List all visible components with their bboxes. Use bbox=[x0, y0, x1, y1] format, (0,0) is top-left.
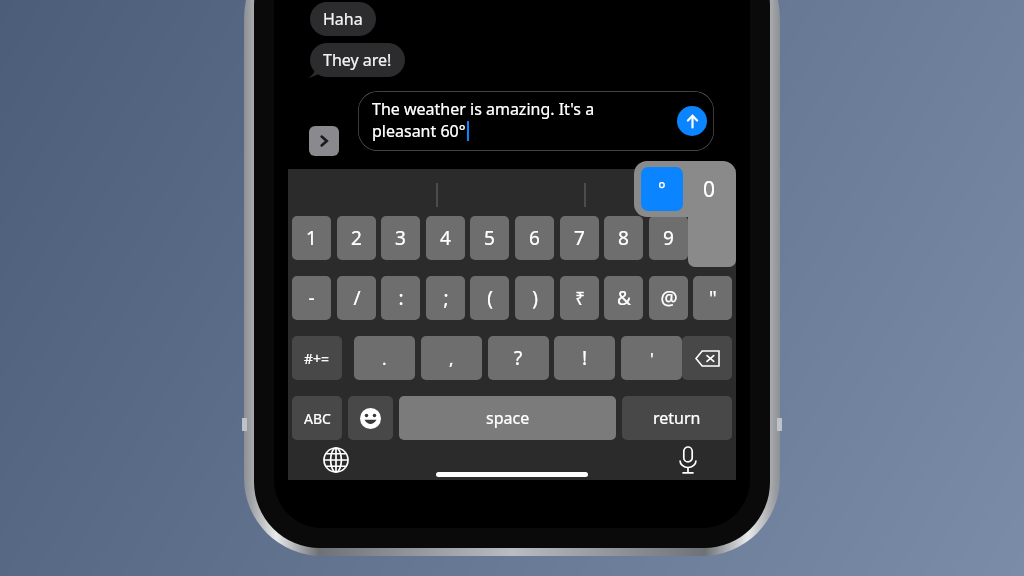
staticText: " bbox=[709, 285, 717, 311]
staticText: . bbox=[382, 347, 387, 370]
button[interactable]: 5 bbox=[470, 216, 509, 260]
staticText: #+= bbox=[304, 349, 330, 368]
staticText: ABC bbox=[304, 409, 331, 428]
button[interactable]: ; bbox=[426, 276, 465, 320]
button[interactable]: , bbox=[421, 336, 482, 380]
staticText: ! bbox=[582, 345, 588, 371]
staticText: @ bbox=[660, 285, 678, 311]
staticText: ? bbox=[514, 345, 523, 371]
staticText: 3 bbox=[395, 225, 406, 251]
button[interactable]: Send message bbox=[677, 106, 707, 136]
button[interactable]: Emoji keyboard bbox=[348, 396, 393, 440]
button[interactable]: Dictate bbox=[668, 440, 708, 480]
button[interactable]: ₹ bbox=[560, 276, 599, 320]
staticText: 1 bbox=[306, 225, 317, 251]
button[interactable]: Haha bbox=[310, 2, 376, 36]
staticText: ) bbox=[532, 285, 538, 311]
button[interactable]: 8 bbox=[604, 216, 643, 260]
staticText: ' bbox=[650, 347, 654, 370]
staticText: ( bbox=[487, 285, 493, 311]
staticText: & bbox=[617, 285, 631, 311]
button[interactable]: ABC bbox=[292, 396, 342, 440]
button[interactable]: ' bbox=[621, 336, 682, 380]
staticText: ; bbox=[443, 285, 449, 311]
button[interactable]: ) bbox=[515, 276, 554, 320]
staticText: - bbox=[308, 285, 315, 311]
button[interactable]: " bbox=[693, 276, 732, 320]
button[interactable]: 2 bbox=[337, 216, 376, 260]
staticText: : bbox=[398, 285, 404, 311]
button[interactable]: 3 bbox=[381, 216, 420, 260]
staticText: 2 bbox=[351, 225, 362, 251]
button[interactable]: ? bbox=[488, 336, 549, 380]
button[interactable]: . bbox=[354, 336, 415, 380]
staticText: 6 bbox=[529, 225, 540, 251]
staticText: ° bbox=[658, 177, 666, 202]
button[interactable]: & bbox=[604, 276, 643, 320]
button[interactable]: #+= bbox=[292, 336, 342, 380]
staticText: 8 bbox=[618, 225, 629, 251]
button[interactable]: 4 bbox=[426, 216, 465, 260]
button[interactable]: 7 bbox=[560, 216, 599, 260]
staticText: They are! bbox=[323, 49, 392, 71]
button[interactable]: 9 bbox=[649, 216, 688, 260]
button[interactable]: ! bbox=[554, 336, 615, 380]
button[interactable]: @ bbox=[649, 276, 688, 320]
staticText: 4 bbox=[440, 225, 451, 251]
button[interactable]: The weather is amazing. It's a bbox=[358, 91, 714, 151]
staticText: / bbox=[353, 285, 361, 311]
staticText: The weather is amazing. It's a bbox=[372, 98, 595, 120]
button[interactable]: Backspace bbox=[682, 336, 732, 380]
button[interactable]: Change keyboard language bbox=[316, 440, 356, 480]
staticText: return bbox=[653, 407, 701, 429]
button[interactable]: 6 bbox=[515, 216, 554, 260]
button[interactable]: ° bbox=[634, 161, 736, 269]
button[interactable]: They are! bbox=[310, 43, 405, 77]
button[interactable]: 1 bbox=[292, 216, 331, 260]
staticText: pleasant 60° bbox=[372, 120, 466, 142]
button[interactable]: - bbox=[292, 276, 331, 320]
staticText: 0 bbox=[703, 175, 716, 204]
staticText: 9 bbox=[663, 225, 674, 251]
button[interactable]: : bbox=[381, 276, 420, 320]
button[interactable]: return bbox=[622, 396, 732, 440]
staticText: 7 bbox=[574, 225, 585, 251]
staticText: ₹ bbox=[575, 287, 585, 310]
staticText: Haha bbox=[323, 8, 363, 30]
staticText: , bbox=[449, 347, 454, 370]
button[interactable]: space bbox=[399, 396, 616, 440]
button[interactable]: / bbox=[337, 276, 376, 320]
staticText: space bbox=[486, 407, 530, 429]
button[interactable]: ( bbox=[470, 276, 509, 320]
staticText: 5 bbox=[484, 225, 495, 251]
button[interactable]: Expand app drawer bbox=[309, 126, 339, 156]
